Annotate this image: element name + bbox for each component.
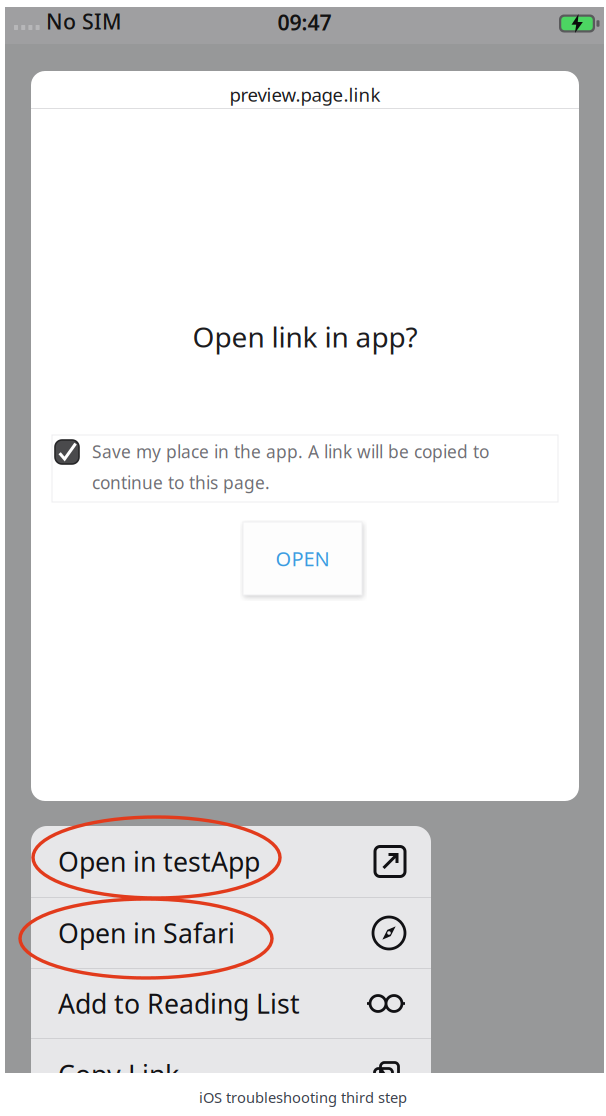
button[interactable]: Add to Reading List	[31, 969, 431, 1038]
button[interactable]: OPEN	[243, 522, 362, 595]
staticText: OPEN	[275, 545, 329, 572]
button[interactable]: Copy Link	[31, 1039, 431, 1110]
button[interactable]: Open in Safari	[31, 898, 431, 968]
staticText: iOS troubleshooting third step	[199, 1087, 407, 1107]
staticText: Open link in app?	[192, 318, 417, 355]
button[interactable]: Open in testApp	[31, 826, 431, 897]
staticText: Copy Link	[58, 1057, 179, 1092]
staticText: 09:47	[277, 8, 331, 36]
staticText: Add to Reading List	[58, 986, 300, 1021]
staticText: No SIM	[46, 7, 122, 35]
staticText: Save my place in the app. A link will be…	[92, 440, 489, 494]
staticText: Open in testApp	[58, 844, 260, 879]
staticText: Open in Safari	[58, 915, 235, 951]
staticText: preview.page.link	[229, 82, 380, 107]
